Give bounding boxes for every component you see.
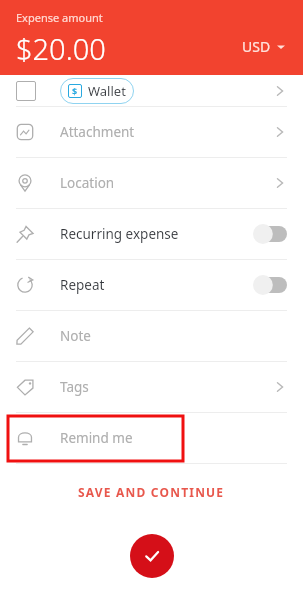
staticText: Attachment [60,123,135,141]
staticText: $20.00 [16,29,106,68]
staticText: $ [72,85,78,97]
staticText: USD [242,37,271,56]
button[interactable]: $ [0,75,303,106]
staticText: Expense amount [16,10,103,25]
button[interactable]: Recurring expense [0,209,303,259]
button[interactable]: Confirm [130,534,174,578]
staticText: Remind me [60,429,133,447]
button[interactable]: Location [0,158,303,208]
button[interactable]: Repeat [0,260,303,310]
staticText: Recurring expense [60,225,179,243]
staticText: Note [60,327,91,345]
button[interactable]: SAVE AND CONTINUE [58,478,245,506]
button[interactable]: Note [0,311,303,361]
staticText: Location [60,174,115,192]
button[interactable]: Remind me [0,413,303,463]
staticText: SAVE AND CONTINUE [78,484,225,500]
button[interactable]: USD [236,31,291,62]
staticText: Repeat [60,276,105,294]
staticText: Wallet [88,82,126,100]
button[interactable]: Tags [0,362,303,412]
button[interactable]: Attachment [0,107,303,157]
staticText: Tags [60,378,89,396]
